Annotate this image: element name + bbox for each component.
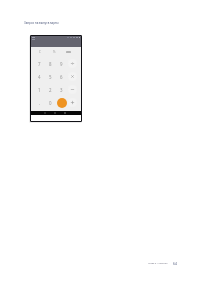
staticText: C xyxy=(39,50,41,54)
staticText: 0 xyxy=(49,100,52,106)
button[interactable]: % xyxy=(47,47,61,57)
button[interactable] xyxy=(67,57,78,70)
button[interactable] xyxy=(56,96,67,109)
staticText: Запрос на выпуск карты xyxy=(24,21,59,25)
staticText: 3 xyxy=(60,87,63,93)
button[interactable]: Delete xyxy=(61,47,75,57)
button[interactable]: 6 xyxy=(56,70,67,83)
button[interactable]: 0 xyxy=(45,96,56,109)
button[interactable]: 9 xyxy=(56,57,67,70)
button[interactable]: 7 xyxy=(34,57,45,70)
staticText: 5 xyxy=(49,74,52,80)
button[interactable] xyxy=(67,70,78,83)
button[interactable]: 8 xyxy=(45,57,56,70)
button[interactable] xyxy=(67,96,78,109)
button[interactable]: 3 xyxy=(56,83,67,96)
staticText: 7 xyxy=(38,61,41,67)
staticText: Глава 8. Интернет xyxy=(148,262,168,265)
staticText: 1 xyxy=(38,87,41,93)
button[interactable]: 1 xyxy=(34,83,45,96)
button[interactable] xyxy=(67,83,78,96)
button[interactable]: 4 xyxy=(34,70,45,83)
staticText: . xyxy=(39,100,41,106)
staticText: 64 xyxy=(173,261,177,265)
button[interactable]: 2 xyxy=(45,83,56,96)
button[interactable]: 5 xyxy=(45,70,56,83)
staticText: 4 xyxy=(38,74,41,80)
button[interactable]: C xyxy=(33,47,47,57)
staticText: 2 xyxy=(49,87,52,93)
staticText: % xyxy=(53,50,56,54)
staticText: 9 xyxy=(60,61,63,67)
staticText: 6 xyxy=(60,74,63,80)
staticText: 8 xyxy=(49,61,52,67)
